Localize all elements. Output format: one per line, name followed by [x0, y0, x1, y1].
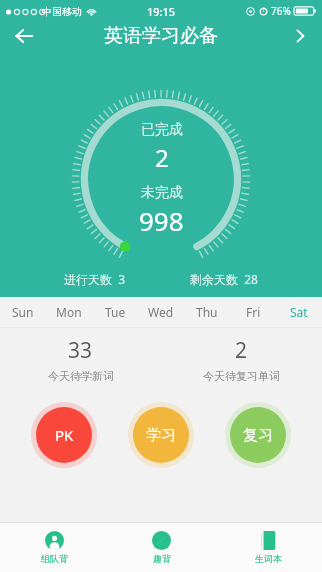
staticText: 进行天数 3 [64, 271, 126, 287]
staticText: Sat [290, 304, 308, 320]
staticText: 19:15 [147, 4, 176, 19]
staticText: 生词本 [255, 553, 282, 564]
staticText: 33 [68, 336, 93, 365]
staticText: 英语学习必备 [104, 24, 218, 48]
button[interactable]: 生词本 [215, 523, 322, 572]
staticText: 2 [155, 141, 169, 174]
button[interactable]: Next [278, 14, 322, 58]
button[interactable]: Sun [0, 297, 46, 327]
staticText: 998 [139, 203, 184, 238]
staticText: 76% [271, 4, 291, 18]
staticText: Mon [56, 304, 82, 320]
button[interactable]: Wed [138, 297, 184, 327]
staticText: 今天待学新词 [48, 369, 114, 383]
staticText: 趣背 [153, 553, 171, 564]
staticText: 复习 [243, 426, 273, 445]
staticText: Sun [12, 304, 34, 320]
staticText: Tue [105, 304, 126, 320]
button[interactable]: 33 [0, 328, 161, 390]
button[interactable]: Mon [46, 297, 92, 327]
staticText: Wed [148, 304, 174, 320]
staticText: 未完成 [141, 184, 183, 202]
button[interactable]: 复习 [225, 402, 291, 468]
staticText: 已完成 [141, 121, 183, 139]
staticText: 学习 [146, 426, 176, 445]
staticText: 2 [235, 336, 248, 365]
button[interactable]: Fri [230, 297, 276, 327]
button[interactable]: 组队背 [0, 523, 108, 572]
button[interactable]: 趣背 [108, 523, 215, 572]
staticText: 今天待复习单词 [203, 369, 280, 383]
staticText: Fri [246, 304, 261, 320]
button[interactable]: PK [31, 402, 97, 468]
staticText: 剩余天数 28 [190, 271, 258, 287]
staticText: 中国移动 [42, 5, 82, 18]
staticText: PK [55, 425, 74, 445]
button[interactable]: 学习 [128, 402, 194, 468]
button[interactable]: Tue [92, 297, 138, 327]
staticText: 组队背 [41, 553, 68, 564]
button[interactable]: Back [0, 14, 48, 58]
staticText: Thu [196, 304, 218, 320]
button[interactable]: Sat [276, 297, 322, 327]
button[interactable]: 2 [161, 328, 322, 390]
button[interactable]: Thu [184, 297, 230, 327]
